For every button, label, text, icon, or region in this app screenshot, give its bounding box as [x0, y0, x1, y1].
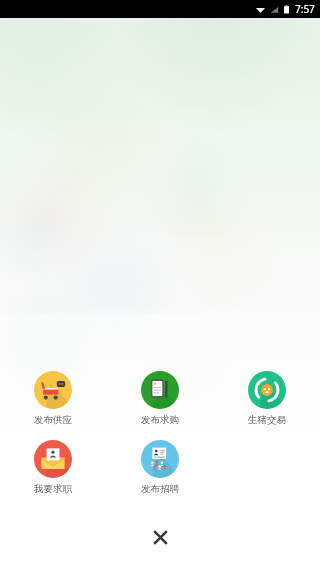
button[interactable]: 发布供应 — [0, 369, 106, 428]
button[interactable]: 发布招聘 — [106, 438, 213, 497]
button[interactable]: 生猪交易 — [213, 369, 320, 428]
staticText: 发布供应 — [34, 414, 72, 426]
staticText: 生猪交易 — [248, 414, 286, 426]
button[interactable]: 我要求职 — [0, 438, 106, 497]
button[interactable]: Close — [142, 519, 178, 555]
staticText: 发布求购 — [141, 414, 179, 426]
button[interactable]: 发布求购 — [106, 369, 213, 428]
staticText: 我要求职 — [34, 483, 72, 495]
staticText: 发布招聘 — [141, 483, 179, 495]
staticText: 7:57 — [295, 2, 315, 16]
